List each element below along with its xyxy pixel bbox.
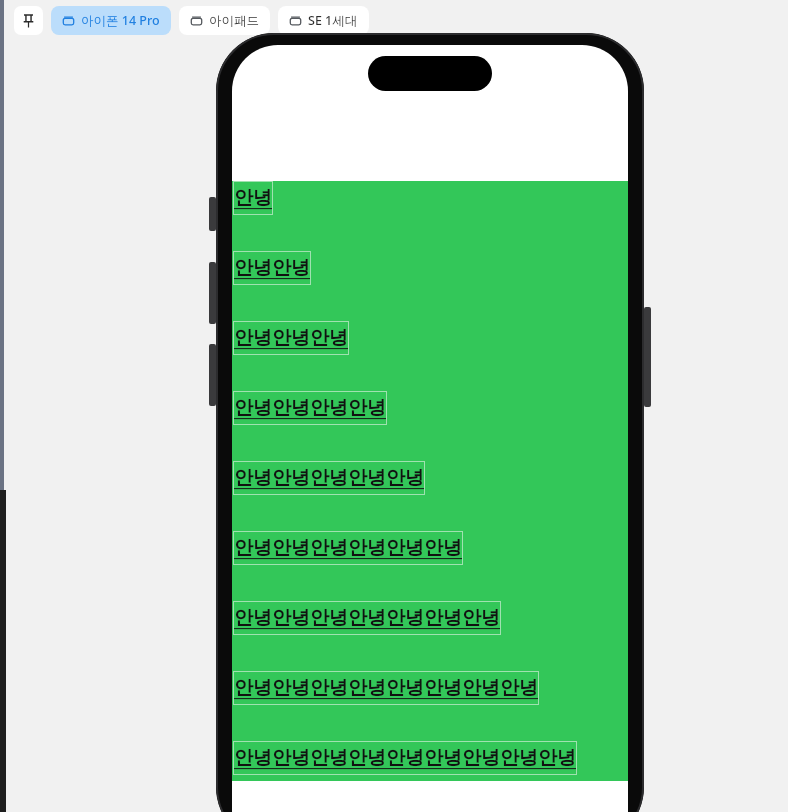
- button[interactable]: 고정: [14, 6, 43, 35]
- button[interactable]: SE 1세대: [278, 6, 369, 35]
- staticText: 아이패드: [209, 13, 259, 29]
- staticText: 안녕안녕안녕안녕안녕안녕안녕안녕안녕: [234, 746, 576, 770]
- staticText: 안녕안녕안녕: [234, 326, 348, 350]
- button[interactable]: 안녕안녕안녕안녕: [233, 391, 387, 425]
- button[interactable]: 안녕안녕안녕안녕안녕: [233, 461, 425, 495]
- button[interactable]: 안녕안녕안녕안녕안녕안녕: [233, 531, 463, 565]
- button[interactable]: 안녕: [233, 181, 273, 215]
- button[interactable]: 안녕안녕: [233, 251, 311, 285]
- staticText: 안녕안녕안녕안녕안녕안녕안녕안녕: [234, 676, 538, 700]
- button[interactable]: 안녕안녕안녕안녕안녕안녕안녕안녕안녕: [233, 741, 577, 775]
- staticText: 안녕안녕안녕안녕: [234, 396, 386, 420]
- staticText: 안녕안녕안녕안녕안녕: [234, 466, 424, 490]
- staticText: 안녕: [234, 186, 272, 210]
- button[interactable]: 안녕안녕안녕: [233, 321, 349, 355]
- button[interactable]: 안녕안녕안녕안녕안녕안녕안녕: [233, 601, 501, 635]
- button[interactable]: 안녕안녕안녕안녕안녕안녕안녕안녕: [233, 671, 539, 705]
- staticText: 안녕안녕안녕안녕안녕안녕안녕: [234, 606, 500, 630]
- staticText: 안녕안녕: [234, 256, 310, 280]
- staticText: 아이폰 14 Pro: [81, 12, 160, 29]
- staticText: 안녕안녕안녕안녕안녕안녕: [234, 536, 462, 560]
- button[interactable]: 아이폰 14 Pro: [51, 6, 171, 35]
- button[interactable]: 아이패드: [179, 6, 270, 35]
- staticText: SE 1세대: [308, 12, 358, 29]
